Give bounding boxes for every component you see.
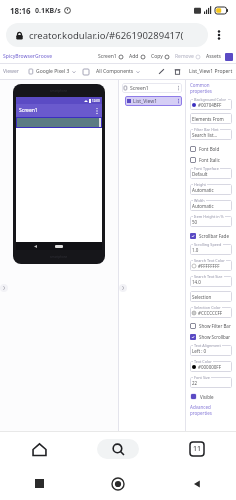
staticText: SpicyBrowserGroove <box>3 53 53 60</box>
button[interactable]: Rename <box>157 67 166 76</box>
button[interactable]: Selection <box>190 291 232 302</box>
staticText: Height <box>194 182 206 187</box>
staticText: Show Scrollbar <box>199 334 231 340</box>
button[interactable]: Automatic <box>190 184 232 195</box>
button[interactable]: Left : 0 <box>190 345 232 356</box>
staticText: #CCCCCCFF <box>198 310 223 316</box>
staticText: #FFFFFFFF <box>198 263 220 269</box>
staticText: Search Text Color <box>194 258 225 263</box>
staticText: 22 <box>192 380 198 386</box>
staticText: Font Bold <box>199 146 220 152</box>
staticText: Scrollbar Fade <box>199 233 229 239</box>
staticText: 18:16 <box>10 5 31 16</box>
staticText: Advanced properties <box>190 404 232 416</box>
staticText: Viewer <box>3 68 19 75</box>
staticText: smartphone <box>50 255 68 259</box>
staticText: Search Text Size <box>194 274 223 279</box>
staticText: Add <box>129 53 139 60</box>
staticText: Automatic <box>192 203 214 209</box>
staticText: Scrolling Speed <box>194 242 222 247</box>
button[interactable]: Show Filter Bar <box>190 320 232 331</box>
staticText: Font Italic <box>199 157 220 163</box>
staticText: Visible <box>200 394 214 400</box>
button[interactable]: Google Pixel 3 <box>29 68 76 75</box>
button[interactable]: Search <box>78 431 157 467</box>
staticText: Show Filter Bar <box>199 323 231 329</box>
staticText: 1.0 <box>192 247 199 253</box>
button[interactable]: 14.0 <box>190 276 232 287</box>
staticText: Filter Bar Hint <box>194 127 219 132</box>
staticText: Text Alignment <box>194 343 221 348</box>
staticText: All Components <box>96 68 134 75</box>
staticText: Search list... <box>192 132 218 138</box>
button[interactable]: Assets <box>206 53 222 60</box>
staticText: 12:00 <box>92 99 100 103</box>
button[interactable]: #CCCCCCFF <box>190 307 232 318</box>
button[interactable]: Show Scrollbar <box>190 331 232 342</box>
staticText: Font Size <box>194 375 210 380</box>
button[interactable]: #000000FF <box>190 361 232 372</box>
staticText: 14.0 <box>192 279 201 285</box>
button[interactable]: Settings <box>225 53 233 61</box>
staticText: Google Pixel 3 <box>36 68 70 75</box>
staticText: Width <box>194 198 205 203</box>
staticText: #00704BFF <box>198 102 222 108</box>
button[interactable]: Screen1 <box>98 53 123 60</box>
button[interactable]: #FFFFFFFF <box>190 260 232 271</box>
button[interactable]: Default <box>190 168 232 179</box>
button[interactable]: More options <box>208 24 230 46</box>
staticText: 50 <box>192 219 198 225</box>
staticText: Elements From Strin <box>192 116 232 122</box>
button[interactable]: Remove <box>175 53 200 60</box>
staticText: creator.kodular.io/#626190289417( <box>29 29 184 42</box>
staticText: Common properties <box>190 82 232 94</box>
button[interactable]: Elements From Strin <box>190 113 232 124</box>
button[interactable]: 50 <box>190 216 232 227</box>
button[interactable]: All Components <box>96 68 150 75</box>
button[interactable]: Scrollbar Fade <box>190 230 232 241</box>
button[interactable]: #00704BFF <box>190 99 232 110</box>
button[interactable]: Search list... <box>190 129 232 140</box>
button[interactable]: Automatic <box>190 200 232 211</box>
button[interactable]: Copy <box>151 53 169 60</box>
staticText: Screen1 <box>19 107 38 114</box>
button[interactable]: 1.0 <box>190 244 232 255</box>
staticText: Text Color <box>194 359 212 364</box>
button[interactable]: Font Italic <box>190 154 232 165</box>
button[interactable] <box>16 117 102 128</box>
button[interactable]: List_View1 <box>125 96 182 106</box>
staticText: Item Height in % <box>194 214 224 219</box>
button[interactable]: Add <box>129 53 145 60</box>
staticText: Remove <box>175 53 194 60</box>
button[interactable]: Screen1 <box>122 83 182 93</box>
staticText: 11 <box>193 444 202 454</box>
button[interactable]: Back <box>157 467 236 500</box>
staticText: Default <box>192 171 208 177</box>
button[interactable]: creator.kodular.io/#626190289417( <box>6 23 208 47</box>
button[interactable]: Tabs: 11 open <box>157 431 236 467</box>
staticText: Automatic <box>192 187 214 193</box>
staticText: smartphone <box>50 89 68 93</box>
button[interactable]: Home <box>78 467 157 500</box>
button[interactable]: Visible <box>190 391 232 402</box>
button[interactable]: Font Bold <box>190 143 232 154</box>
button[interactable]: 22 <box>190 377 232 388</box>
button[interactable]: Recent apps <box>0 467 78 500</box>
staticText: List_View1 <box>133 98 158 105</box>
staticText: Assets <box>206 53 222 60</box>
staticText: Screen1 <box>130 85 149 92</box>
staticText: Screen1 <box>98 53 117 60</box>
button[interactable]: Home <box>0 431 78 467</box>
button[interactable]: Collapse panel <box>0 284 8 292</box>
button[interactable]: Delete <box>173 67 182 76</box>
button[interactable]: Toggle viewer <box>82 68 90 76</box>
staticText: #000000FF <box>198 364 222 370</box>
staticText: Copy <box>151 53 163 60</box>
staticText: Left : 0 <box>192 348 207 354</box>
staticText: Background Color <box>194 97 227 102</box>
staticText: Selection Color <box>194 305 221 310</box>
staticText: Font Typeface <box>194 166 219 171</box>
button[interactable]: Collapse panel <box>119 284 127 292</box>
staticText: Selection <box>192 294 212 300</box>
staticText: List_View1 Propert <box>189 68 233 75</box>
